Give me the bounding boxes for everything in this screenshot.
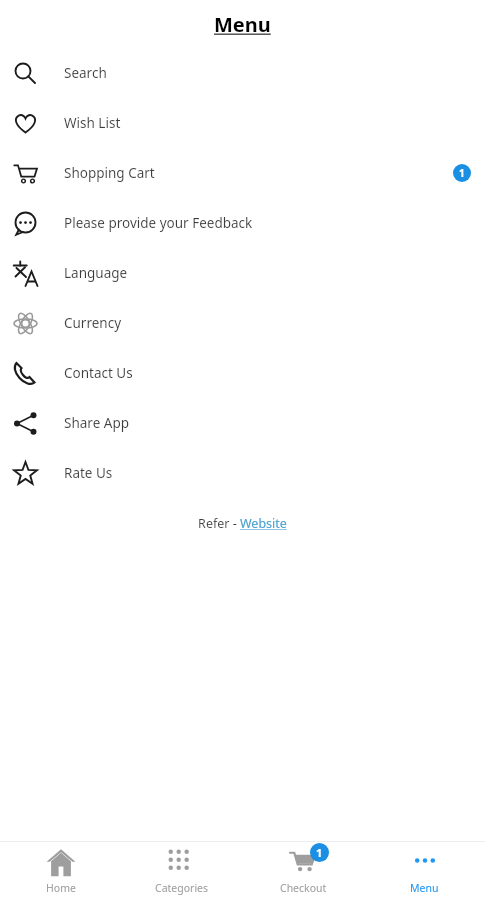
button[interactable]: Wish List [0,98,485,148]
staticText: Home [46,881,76,895]
button[interactable]: Search [0,48,485,98]
button[interactable]: Rate Us [0,448,485,498]
staticText: Currency [64,314,122,332]
button[interactable]: Please provide your Feedback [0,198,485,248]
staticText: Shopping Cart [64,164,155,182]
staticText: 1 [316,845,323,860]
button[interactable]: Home [0,842,121,900]
button[interactable]: Contact Us [0,348,485,398]
staticText: Contact Us [64,364,133,382]
button[interactable]: Refer - Website [198,515,287,532]
button[interactable]: Currency [0,298,485,348]
staticText: Refer - Website [198,515,287,532]
staticText: Please provide your Feedback [64,214,253,232]
button[interactable]: Checkout [243,842,364,900]
staticText: Menu [410,881,439,895]
button[interactable]: Menu [364,842,485,900]
staticText: Language [64,264,128,282]
staticText: Rate Us [64,464,113,482]
button[interactable]: Categories [121,842,242,900]
staticText: Wish List [64,114,121,132]
staticText: 1 [459,166,465,180]
staticText: Categories [155,881,209,895]
button[interactable]: Share App [0,398,485,448]
button[interactable]: Language [0,248,485,298]
staticText: Menu [214,11,271,38]
staticText: Search [64,64,107,82]
button[interactable]: Shopping Cart [0,148,485,198]
staticText: Share App [64,414,129,432]
staticText: Checkout [280,881,327,895]
